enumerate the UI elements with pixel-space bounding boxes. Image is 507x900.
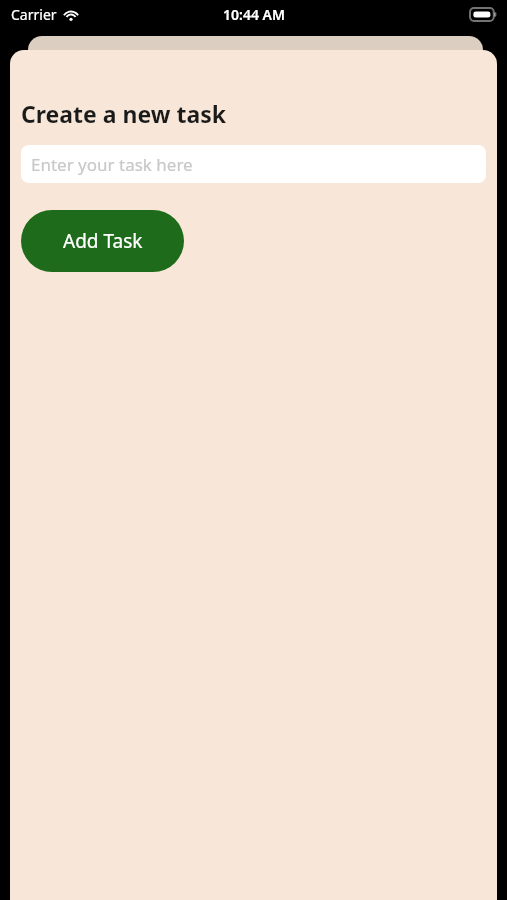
- other: Wi-Fi signal: [62, 8, 80, 21]
- staticText: 10:44 AM: [223, 5, 285, 24]
- other: Battery full: [470, 8, 497, 21]
- staticText: Create a new task: [21, 98, 226, 129]
- button[interactable]: Add Task: [21, 210, 184, 272]
- staticText: Enter your task here: [31, 153, 193, 176]
- staticText: Carrier: [11, 5, 57, 24]
- staticText: Add Task: [63, 228, 143, 254]
- button[interactable]: Enter your task here: [21, 145, 486, 183]
